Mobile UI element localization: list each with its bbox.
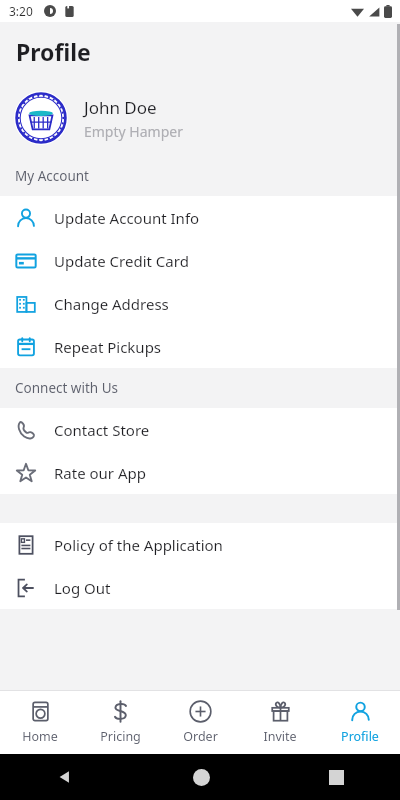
staticText: Home	[22, 728, 58, 745]
button[interactable]: Log Out	[0, 566, 400, 609]
button[interactable]: Change Address	[0, 282, 400, 325]
button[interactable]: Contact Store	[0, 408, 400, 451]
staticText: Update Credit Card	[54, 251, 189, 271]
other: Back	[56, 768, 74, 786]
staticText: Contact Store	[54, 420, 150, 440]
staticText: Empty Hamper	[84, 122, 183, 141]
button[interactable]: Order	[160, 694, 240, 751]
staticText: Log Out	[54, 578, 111, 598]
staticText: Policy of the Application	[54, 535, 223, 555]
staticText: Invite	[263, 728, 297, 745]
staticText: Profile	[16, 36, 91, 67]
button[interactable]: Policy of the Application	[0, 523, 400, 566]
button[interactable]: John Doe	[0, 80, 400, 156]
staticText: My Account	[15, 167, 89, 185]
staticText: Rate our App	[54, 463, 146, 483]
button[interactable]: Home	[0, 694, 80, 751]
staticText: 3:20	[9, 3, 33, 19]
staticText: Pricing	[100, 728, 141, 745]
button[interactable]: Pricing	[80, 694, 160, 751]
button[interactable]: Update Account Info	[0, 196, 400, 239]
staticText: Order	[183, 728, 218, 745]
staticText: Change Address	[54, 294, 169, 314]
button[interactable]: Rate our App	[0, 451, 400, 494]
staticText: Update Account Info	[54, 208, 200, 228]
staticText: Profile	[341, 728, 379, 745]
button[interactable]: Repeat Pickups	[0, 325, 400, 368]
other: Home	[193, 769, 210, 786]
staticText: Repeat Pickups	[54, 337, 162, 357]
button[interactable]: Update Credit Card	[0, 239, 400, 282]
staticText: Connect with Us	[15, 379, 119, 397]
button[interactable]: Invite	[240, 694, 320, 751]
staticText: John Doe	[84, 96, 157, 119]
button[interactable]: Profile	[320, 694, 400, 751]
